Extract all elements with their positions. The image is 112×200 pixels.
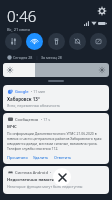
button[interactable]: Фонарик (48, 33, 65, 50)
staticText: МЧС (7, 124, 17, 130)
staticText: Хабаровск 13° (7, 96, 40, 102)
staticText: 0:46 (7, 6, 37, 26)
button[interactable]: Развернуть (48, 80, 64, 82)
staticText: За месяц 28 (41, 55, 62, 60)
button[interactable]: Сегодня (7, 55, 33, 60)
staticText: Удалить (33, 155, 49, 160)
staticText: • (50, 170, 53, 175)
button[interactable]: Wi-Fi (26, 33, 43, 50)
staticText: Некоторые функции могут быть недоступны (7, 184, 83, 189)
button[interactable]: Яркость (3, 63, 109, 77)
staticText: • 17 ч (41, 117, 51, 122)
button[interactable]: Сообщения (3, 113, 109, 164)
button[interactable]: Настройки (97, 6, 107, 16)
staticText: Сегодня 28 (13, 55, 33, 60)
staticText: Google (15, 89, 29, 94)
staticText: Прочитано (7, 155, 28, 160)
staticText: Система Android (15, 170, 48, 175)
staticText: Ясно, переменная облачность (7, 103, 61, 108)
staticText: Сообщения (15, 117, 39, 122)
button[interactable]: Система Android (3, 166, 109, 194)
button[interactable]: Прочитано (7, 154, 28, 161)
staticText: Недостаточно памяти (7, 177, 55, 183)
staticText: • 11 мин (31, 89, 46, 94)
button[interactable]: За месяц (41, 55, 62, 60)
button[interactable]: Закрыть (53, 168, 71, 186)
button[interactable]: Удалить (33, 154, 49, 161)
staticText: Ответить (54, 155, 72, 160)
staticText: Вс, 21 июня (7, 27, 30, 32)
button[interactable]: Без звука (69, 33, 86, 50)
staticText: По информации Дальневосточного УГМС 21.0… (7, 131, 105, 151)
button[interactable]: Настройки звука (5, 33, 22, 50)
button[interactable]: Автоповорот (90, 33, 107, 50)
button[interactable]: Google (3, 85, 109, 111)
button[interactable]: Ответить (54, 154, 72, 161)
